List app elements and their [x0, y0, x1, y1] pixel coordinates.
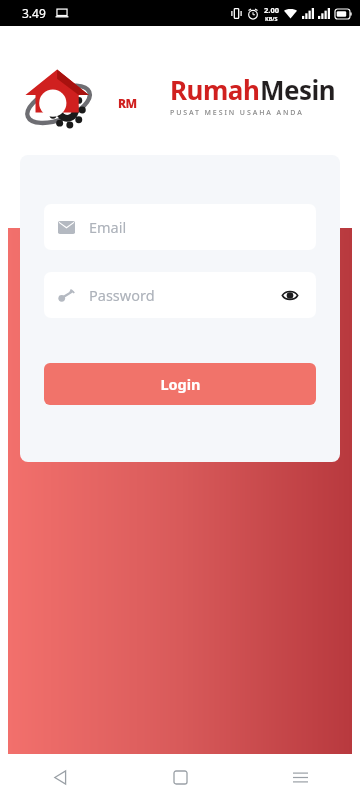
staticText: Mesin	[260, 72, 336, 107]
staticText: RM	[118, 95, 137, 111]
button[interactable]: Home	[120, 754, 240, 800]
staticText: Login	[160, 374, 201, 394]
staticText: KB/S	[265, 15, 278, 22]
staticText: Password	[89, 285, 155, 305]
staticText: Email	[89, 217, 127, 237]
staticText: 2.00	[264, 5, 279, 15]
button[interactable]: Login	[44, 363, 316, 405]
button[interactable]: Password	[44, 272, 316, 318]
button[interactable]: Show password	[278, 283, 302, 307]
staticText: PUSAT MESIN USAHA ANDA	[170, 108, 304, 118]
button[interactable]: Back	[0, 754, 120, 800]
staticText: Rumah	[170, 72, 260, 107]
button[interactable]: Email	[44, 204, 316, 250]
button[interactable]: Recent apps	[240, 754, 360, 800]
staticText: 3.49	[22, 5, 46, 21]
